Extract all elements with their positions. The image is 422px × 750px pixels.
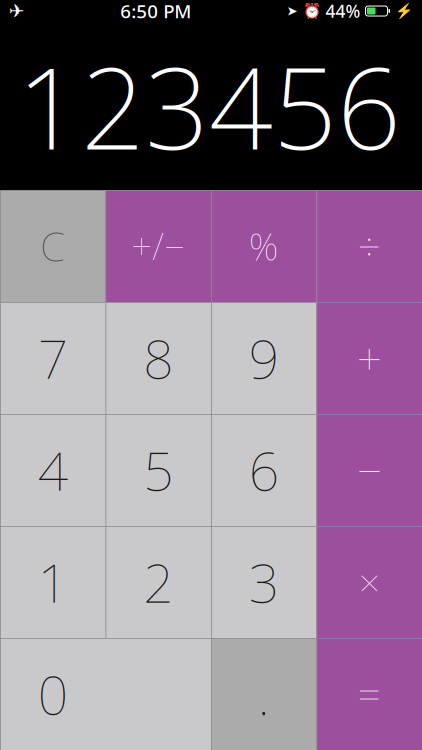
button[interactable]: 9 xyxy=(211,302,316,414)
staticText: 8 xyxy=(143,323,173,393)
staticText: ⏰ xyxy=(302,3,320,19)
staticText: − xyxy=(357,441,382,499)
staticText: ✈ xyxy=(9,0,25,22)
staticText: 4 xyxy=(38,435,68,505)
staticText: ÷ xyxy=(358,219,381,272)
staticText: . xyxy=(258,659,270,729)
staticText: 9 xyxy=(249,323,279,393)
staticText: 2 xyxy=(143,547,173,617)
staticText: × xyxy=(359,557,380,607)
staticText: ⚡ xyxy=(395,3,413,19)
button[interactable]: + xyxy=(316,302,422,414)
staticText: 44% xyxy=(325,0,360,22)
staticText: ➤ xyxy=(286,3,297,18)
button[interactable]: ÷ xyxy=(316,190,422,302)
button[interactable]: % xyxy=(211,190,316,302)
button[interactable]: 0 xyxy=(0,638,211,750)
button[interactable]: 3 xyxy=(211,526,316,638)
button[interactable]: 7 xyxy=(0,302,105,414)
staticText: +/− xyxy=(131,222,185,270)
staticText: 3 xyxy=(249,547,279,617)
button[interactable]: 8 xyxy=(105,302,211,414)
button[interactable]: C xyxy=(0,190,105,302)
button[interactable]: 5 xyxy=(105,414,211,526)
staticText: 5 xyxy=(143,435,173,505)
staticText: + xyxy=(357,329,382,387)
staticText: 7 xyxy=(38,323,68,393)
button[interactable]: = xyxy=(316,638,422,750)
button[interactable]: 2 xyxy=(105,526,211,638)
staticText: % xyxy=(249,221,279,271)
button[interactable]: . xyxy=(211,638,316,750)
staticText: 1 xyxy=(38,547,68,617)
staticText: C xyxy=(40,219,65,272)
button[interactable]: − xyxy=(316,414,422,526)
button[interactable]: × xyxy=(316,526,422,638)
staticText: 0 xyxy=(38,659,68,729)
button[interactable]: 6 xyxy=(211,414,316,526)
staticText: 123456 xyxy=(17,32,401,180)
staticText: 6 xyxy=(249,435,279,505)
staticText: 6:50 PM xyxy=(120,0,191,23)
staticText: = xyxy=(358,667,381,720)
button[interactable]: 1 xyxy=(0,526,105,638)
button[interactable]: +/− xyxy=(105,190,211,302)
button[interactable]: 4 xyxy=(0,414,105,526)
